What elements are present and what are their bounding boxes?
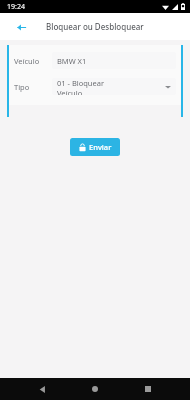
staticText: Bloquear ou Desbloquear bbox=[46, 21, 144, 32]
staticText: Veículo bbox=[14, 56, 40, 66]
button[interactable]: Back bbox=[10, 16, 32, 38]
staticText: Enviar bbox=[89, 142, 112, 152]
button[interactable]: Back bbox=[31, 378, 53, 400]
staticText: 19:24 bbox=[7, 2, 25, 12]
button[interactable]: Home bbox=[84, 378, 106, 400]
staticText: Tipo bbox=[14, 82, 30, 92]
staticText: 01 - Bloquear Veículo bbox=[57, 78, 111, 95]
staticText: BMW X1 bbox=[57, 56, 87, 66]
button[interactable]: BMW X1 bbox=[52, 52, 176, 69]
button[interactable]: Recents bbox=[137, 378, 159, 400]
button[interactable]: Enviar bbox=[70, 138, 120, 156]
button[interactable]: 01 - Bloquear Veículo bbox=[52, 78, 176, 95]
